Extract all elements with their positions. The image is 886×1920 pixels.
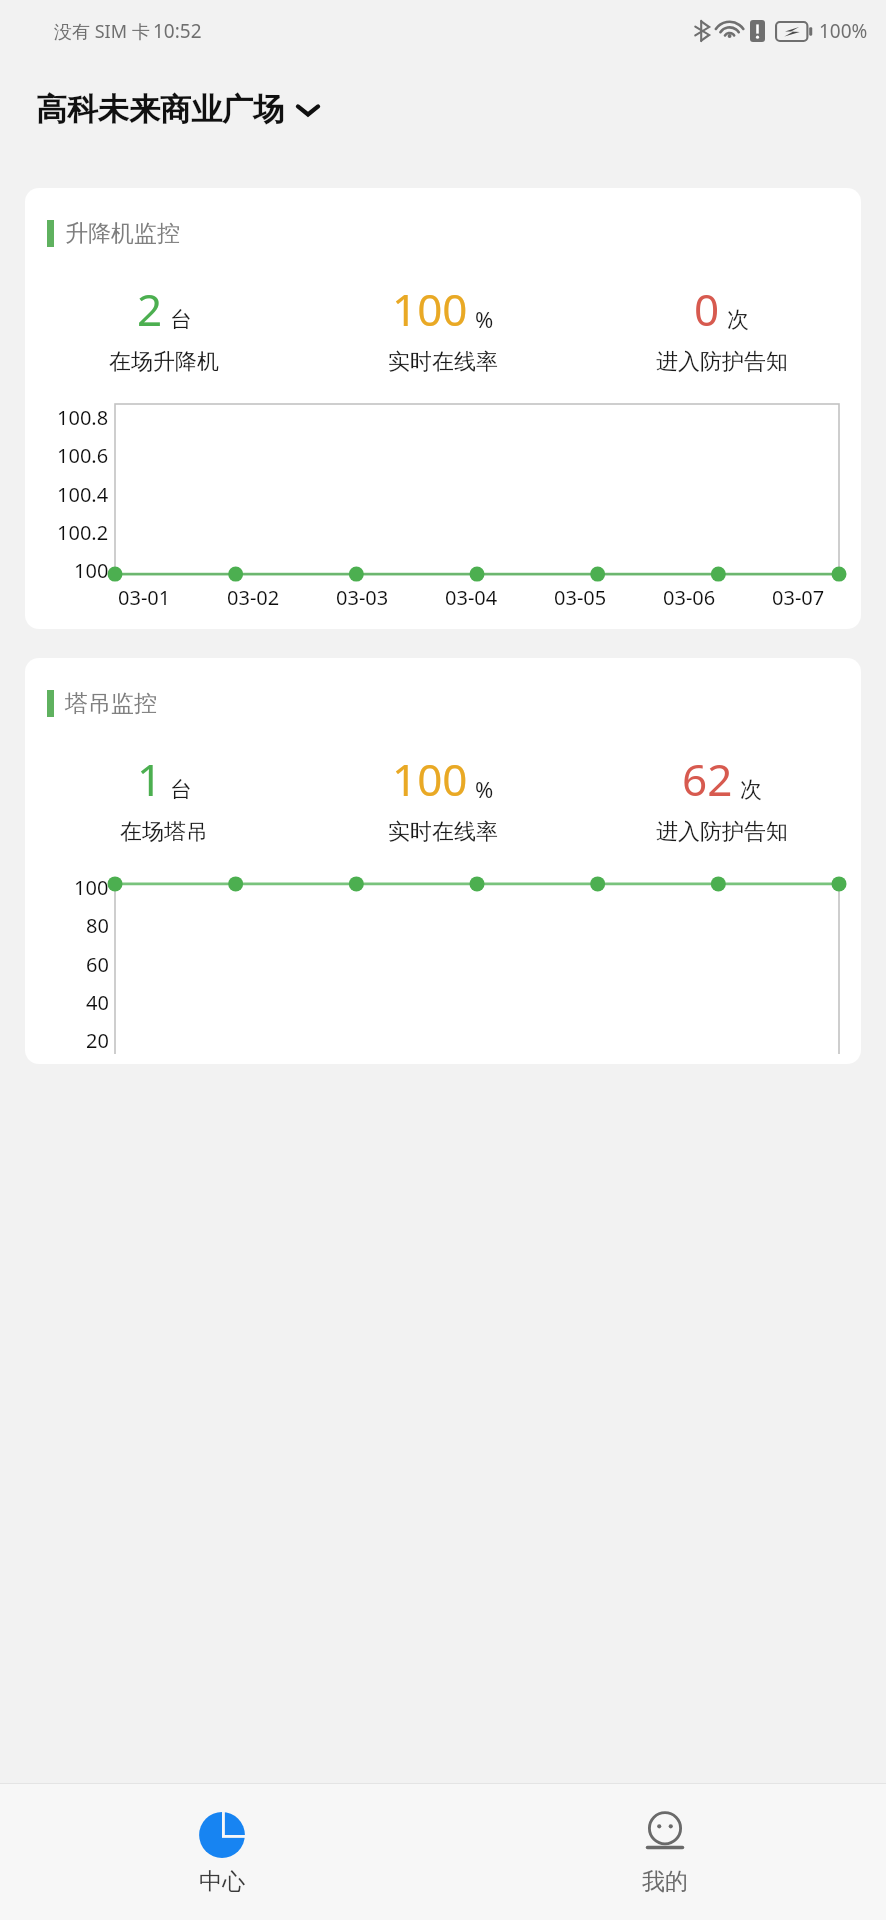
staticText: 在场升降机	[109, 348, 219, 376]
staticText: 10:52	[153, 18, 202, 44]
staticText: 塔吊监控	[65, 689, 157, 718]
staticText: 60	[86, 951, 109, 978]
staticText: 进入防护告知	[656, 818, 788, 846]
button[interactable]: 100	[303, 749, 582, 846]
staticText: 台	[170, 776, 192, 804]
staticText: 100	[74, 874, 109, 901]
staticText: 80	[86, 912, 109, 939]
button[interactable]: 塔吊监控	[25, 658, 861, 1064]
staticText: 1	[137, 749, 163, 809]
staticText: 升降机监控	[65, 219, 180, 248]
staticText: 100.6	[57, 442, 109, 469]
staticText: 40	[86, 989, 109, 1016]
button[interactable]: 2	[25, 279, 303, 376]
staticText: 次	[727, 306, 749, 334]
button[interactable]: 0	[582, 279, 861, 376]
button[interactable]: 我的	[443, 1784, 886, 1920]
staticText: 100.8	[57, 404, 109, 431]
staticText: 台	[170, 306, 192, 334]
staticText: %	[475, 304, 494, 334]
staticText: 100	[392, 749, 468, 809]
staticText: 100.4	[57, 481, 109, 508]
staticText: 中心	[199, 1867, 245, 1896]
staticText: 100	[392, 279, 468, 339]
staticText: 实时在线率	[388, 348, 498, 376]
staticText: 进入防护告知	[656, 348, 788, 376]
staticText: 2	[137, 279, 163, 339]
staticText: 高科未来商业广场	[36, 90, 284, 129]
staticText: 100%	[819, 18, 868, 44]
staticText: 100.2	[57, 519, 109, 546]
staticText: 03-06	[663, 584, 716, 611]
staticText: 0	[694, 279, 720, 339]
button[interactable]: 升降机监控	[25, 188, 861, 629]
staticText: 100	[74, 557, 109, 584]
staticText: 03-05	[554, 584, 607, 611]
staticText: 次	[740, 776, 762, 804]
staticText: 实时在线率	[388, 818, 498, 846]
staticText: 03-07	[772, 584, 825, 611]
staticText: 没有 SIM 卡	[54, 19, 150, 44]
staticText: 我的	[642, 1867, 688, 1896]
staticText: 62	[682, 749, 733, 809]
staticText: 20	[86, 1027, 109, 1054]
button[interactable]: 中心	[0, 1784, 443, 1920]
staticText: %	[475, 774, 494, 804]
staticText: 在场塔吊	[120, 818, 208, 846]
button[interactable]: 1	[25, 749, 303, 846]
staticText: 03-04	[445, 584, 498, 611]
staticText: 03-01	[118, 584, 171, 611]
button[interactable]: 高科未来商业广场	[0, 62, 886, 157]
button[interactable]: 100	[303, 279, 582, 376]
staticText: 03-03	[336, 584, 389, 611]
button[interactable]: 62	[582, 749, 861, 846]
staticText: 03-02	[227, 584, 280, 611]
